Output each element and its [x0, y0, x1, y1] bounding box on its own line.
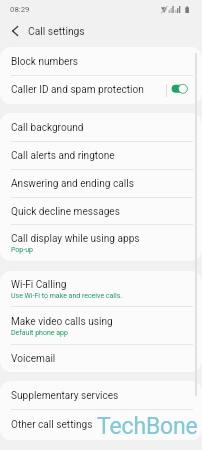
button[interactable]: Other call settings [0, 410, 202, 440]
staticText: Answering and ending calls [11, 178, 134, 190]
button[interactable]: Supplementary services [0, 381, 202, 410]
staticText: Make video calls using [11, 316, 113, 328]
button[interactable]: Call alerts and ringtone [0, 142, 202, 170]
staticText: Default phone app [11, 329, 68, 337]
button[interactable]: Call display while using apps [0, 225, 202, 261]
button[interactable]: Caller ID and spam protection [0, 76, 202, 104]
staticText: Block numbers [11, 56, 79, 68]
button[interactable]: Quick decline messages [0, 198, 202, 225]
staticText: Voicemail [11, 353, 56, 365]
button[interactable]: Caller ID and spam protection toggle [171, 83, 188, 97]
button[interactable]: Voicemail [0, 345, 202, 372]
staticText: Call background [11, 122, 84, 134]
staticText: Other call settings [11, 419, 93, 431]
staticText: Caller ID and spam protection [11, 84, 144, 96]
staticText: Use Wi-Fi to make and receive calls. [11, 292, 123, 300]
staticText: Pop-up [11, 246, 34, 254]
button[interactable]: Navigate up [2, 20, 28, 42]
button[interactable]: Make video calls using [0, 307, 202, 345]
staticText: Wi-Fi Calling [11, 279, 67, 291]
staticText: Call display while using apps [11, 233, 140, 245]
staticText: 08:29 [10, 5, 30, 14]
staticText: Supplementary services [11, 390, 119, 402]
staticText: Call alerts and ringtone [11, 150, 115, 162]
staticText: Quick decline messages [11, 206, 120, 218]
staticText: Call settings [28, 25, 85, 37]
button[interactable]: Block numbers [0, 47, 202, 76]
button[interactable]: Wi-Fi Calling [0, 271, 202, 307]
button[interactable]: Answering and ending calls [0, 170, 202, 198]
button[interactable]: Call background [0, 113, 202, 142]
staticText: TechBone [97, 413, 198, 440]
